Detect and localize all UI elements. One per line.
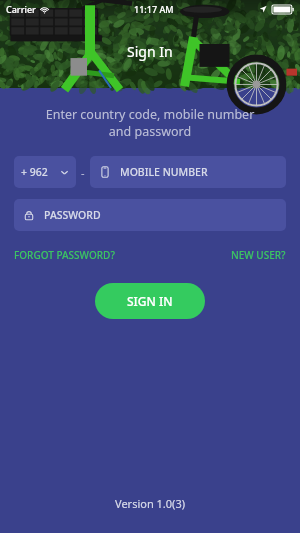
staticText: - [81, 165, 85, 180]
staticText: MOBILE NUMBER [120, 165, 208, 179]
staticText: NEW USER? [231, 248, 286, 262]
button[interactable]: FORGOT PASSWORD? [14, 245, 115, 265]
staticText: Enter country code, mobile number and pa… [20, 106, 280, 140]
staticText: Version 1.0(3) [0, 496, 300, 511]
staticText: PASSWORD [44, 208, 101, 222]
staticText: + 962 [21, 165, 48, 179]
button[interactable]: + 962 [14, 156, 76, 188]
button[interactable]: NEW USER? [231, 245, 286, 265]
staticText: 11:17 AM [134, 3, 174, 15]
button[interactable]: MOBILE NUMBER [90, 156, 286, 188]
staticText: Carrier [6, 3, 36, 15]
button[interactable]: PASSWORD [14, 199, 286, 231]
button[interactable]: SIGN IN [95, 283, 205, 319]
staticText: Sign In [127, 42, 173, 61]
staticText: SIGN IN [127, 293, 173, 309]
staticText: FORGOT PASSWORD? [14, 248, 115, 262]
